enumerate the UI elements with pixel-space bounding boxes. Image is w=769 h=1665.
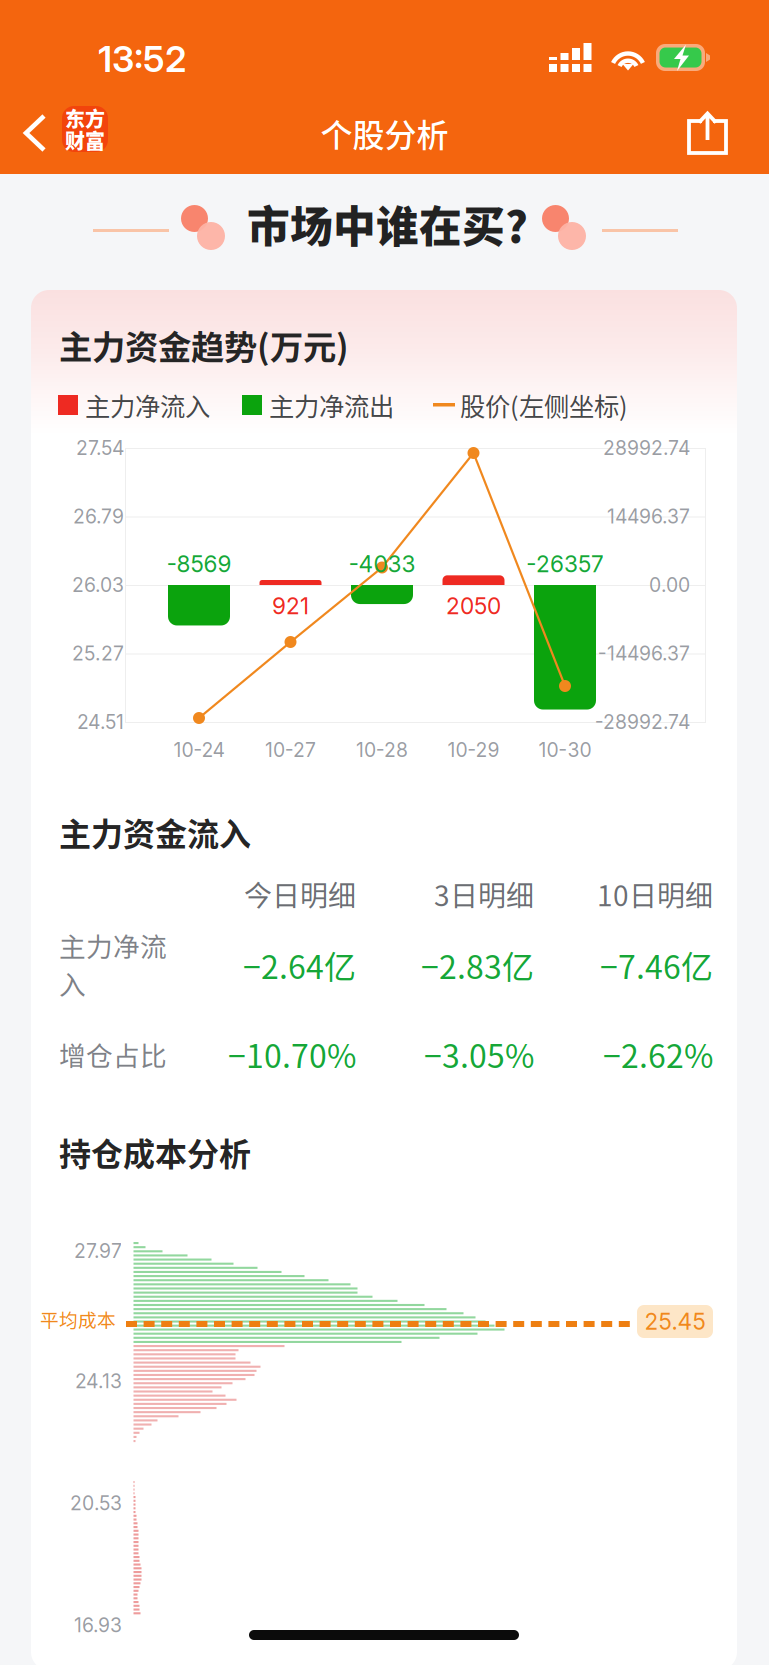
- staticText: 主力净流: [59, 926, 167, 964]
- staticText: 2050: [446, 592, 501, 620]
- staticText: 入: [59, 964, 86, 1002]
- staticText: 921: [272, 592, 309, 620]
- staticText: -26357: [526, 550, 604, 578]
- staticText: 市场中谁在买?: [247, 193, 528, 255]
- staticText: −7.46亿: [600, 942, 713, 988]
- staticText: -4033: [348, 550, 415, 578]
- staticText: 26.03: [72, 573, 124, 597]
- staticText: 主力资金流入: [59, 809, 251, 855]
- staticText: 27.97: [74, 1239, 122, 1263]
- button[interactable]: 分享: [676, 102, 738, 164]
- staticText: 10-24: [173, 738, 224, 762]
- staticText: 28992.74: [603, 436, 690, 460]
- staticText: 个股分析: [320, 110, 448, 156]
- staticText: 东方: [65, 103, 105, 132]
- staticText: 持仓成本分析: [59, 1129, 251, 1175]
- button[interactable]: 返回: [0, 92, 132, 174]
- staticText: 24.51: [77, 710, 124, 734]
- staticText: 财富: [65, 125, 105, 154]
- staticText: 10-27: [265, 738, 316, 762]
- staticText: 26.79: [73, 505, 124, 528]
- staticText: -14496.37: [598, 642, 690, 665]
- staticText: 平均成本: [40, 1305, 116, 1332]
- staticText: 16.93: [74, 1613, 122, 1637]
- staticText: 25.27: [72, 642, 124, 665]
- staticText: 增仓占比: [59, 1035, 167, 1073]
- staticText: -8569: [166, 550, 231, 578]
- staticText: 27.54: [76, 436, 124, 460]
- staticText: −2.62%: [603, 1031, 713, 1077]
- staticText: 24.13: [75, 1369, 122, 1393]
- staticText: −3.05%: [424, 1031, 534, 1077]
- staticText: 13:52: [98, 37, 186, 81]
- staticText: 10日明细: [597, 874, 713, 914]
- staticText: 今日明细: [244, 874, 356, 914]
- staticText: 10-30: [538, 738, 591, 762]
- staticText: -28992.74: [595, 710, 690, 734]
- staticText: −2.64亿: [243, 942, 356, 988]
- staticText: 25.45: [644, 1308, 705, 1335]
- staticText: 20.53: [70, 1491, 122, 1515]
- staticText: −10.70%: [228, 1031, 356, 1077]
- staticText: 10-28: [356, 738, 408, 762]
- staticText: 主力净流出: [269, 387, 394, 423]
- staticText: 主力净流入: [85, 387, 210, 423]
- staticText: 0.00: [649, 573, 690, 597]
- staticText: 10-29: [447, 738, 499, 762]
- staticText: 14496.37: [607, 505, 690, 528]
- staticText: 股价(左侧坐标): [460, 387, 628, 423]
- staticText: −2.83亿: [421, 942, 534, 988]
- staticText: 主力资金趋势(万元): [59, 321, 349, 369]
- staticText: 3日明细: [434, 874, 534, 914]
